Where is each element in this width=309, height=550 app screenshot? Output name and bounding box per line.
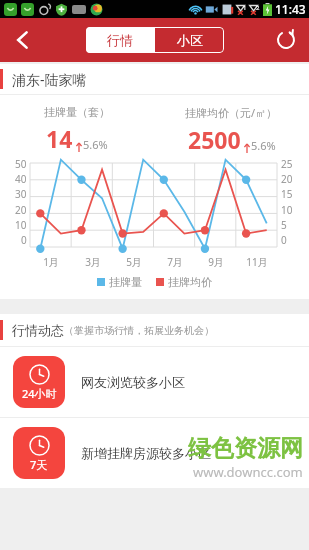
staticText: 挂牌均价: [168, 275, 212, 289]
button[interactable]: 行情动态: [0, 314, 309, 346]
staticText: 20: [281, 172, 293, 186]
staticText: 5月: [126, 255, 142, 269]
staticText: 10: [15, 218, 27, 232]
button[interactable]: Back: [0, 18, 46, 62]
staticText: 11月: [246, 255, 268, 269]
staticText: 0: [281, 233, 287, 247]
button[interactable]: 24小时: [0, 347, 309, 417]
staticText: 1月: [43, 255, 59, 269]
staticText: 3月: [85, 255, 101, 269]
staticText: 绿色资源网: [188, 434, 303, 463]
staticText: 50: [15, 157, 27, 171]
staticText: 2500: [188, 124, 241, 155]
staticText: 7天: [30, 457, 48, 472]
staticText: 2: [256, 4, 260, 12]
staticText: （掌握市场行情，拓展业务机会）: [64, 324, 214, 337]
staticText: 25: [281, 157, 293, 171]
staticText: 14: [46, 123, 73, 154]
staticText: 挂牌量（套）: [44, 105, 110, 119]
button[interactable]: 7天: [0, 418, 309, 488]
staticText: 7月: [167, 255, 183, 269]
staticText: 行情: [107, 32, 133, 48]
staticText: 行情动态: [12, 322, 64, 338]
button[interactable]: 浦东-陆家嘴: [0, 64, 309, 94]
staticText: 5.6%: [251, 138, 276, 153]
staticText: 5: [281, 218, 287, 232]
staticText: 30: [15, 187, 27, 201]
staticText: 新增挂牌房源较多小区: [81, 445, 211, 461]
button[interactable]: 小区: [155, 27, 224, 53]
staticText: 挂牌量: [109, 275, 142, 289]
button[interactable]: 行情: [86, 27, 154, 53]
staticText: 10: [281, 203, 293, 217]
staticText: 挂牌均价（元/㎡）: [185, 105, 278, 120]
staticText: 11:43: [275, 1, 306, 17]
staticText: 9月: [208, 255, 224, 269]
staticText: 0: [21, 233, 27, 247]
staticText: 24小时: [22, 386, 57, 401]
staticText: 小区: [177, 32, 203, 48]
staticText: 20: [15, 203, 27, 217]
button[interactable]: Refresh: [263, 18, 309, 62]
staticText: 5.6%: [83, 137, 108, 152]
staticText: www.downcc.com: [193, 463, 303, 481]
staticText: 15: [281, 187, 293, 201]
staticText: 40: [15, 172, 27, 186]
staticText: 1: [243, 4, 247, 12]
staticText: 浦东-陆家嘴: [12, 70, 87, 89]
staticText: 网友浏览较多小区: [81, 374, 185, 390]
